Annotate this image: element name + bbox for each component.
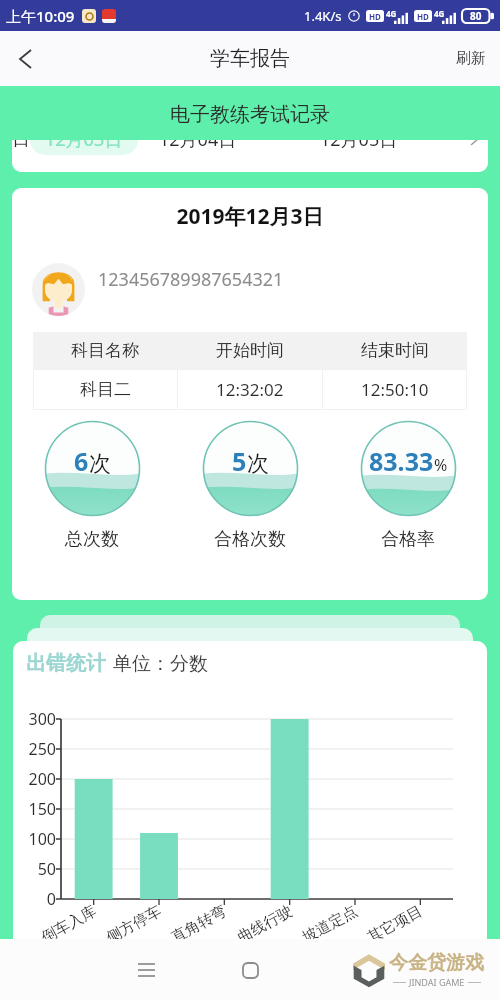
staticText: 学车报告 — [210, 46, 290, 71]
staticText: 123456789987654321 — [98, 267, 284, 292]
staticText: 83.33 — [369, 444, 434, 478]
button[interactable]: 12月03日 — [30, 140, 138, 155]
staticText: 合格次数 — [214, 528, 286, 551]
staticText: 200 — [28, 768, 56, 790]
staticText: 4G — [386, 8, 397, 19]
staticText: 刷新 — [456, 49, 486, 68]
staticText: 科目名称 — [71, 340, 139, 361]
staticText: 电子教练考试记录 — [0, 102, 500, 127]
staticText: 80 — [470, 9, 482, 23]
button[interactable]: Recent apps — [124, 948, 168, 992]
staticText: 日 — [12, 140, 30, 151]
staticText: 倒车入库 — [38, 902, 100, 947]
staticText: 50 — [37, 858, 56, 880]
button[interactable]: 12月04日 — [138, 140, 258, 155]
staticText: HD — [417, 11, 429, 22]
button[interactable]: Home — [228, 948, 272, 992]
staticText: 上午10:09 — [6, 6, 75, 26]
staticText: 150 — [28, 798, 56, 820]
staticText: 次 — [247, 450, 269, 478]
button[interactable]: 12月05日 — [258, 140, 460, 155]
staticText: 5 — [232, 444, 247, 478]
staticText: 100 — [28, 828, 56, 850]
staticText: 12:50:10 — [361, 378, 429, 401]
staticText: 坡道定点 — [299, 902, 361, 947]
staticText: 科目二 — [80, 379, 131, 400]
staticText: 单位：分数 — [113, 652, 208, 676]
staticText: HD — [369, 11, 381, 22]
staticText: 开始时间 — [216, 340, 284, 361]
staticText: 300 — [28, 708, 56, 730]
staticText: 12月05日 — [320, 140, 398, 152]
button[interactable]: 刷新 — [442, 39, 500, 78]
staticText: JINDAI GAME — [409, 976, 465, 988]
staticText: 直角转弯 — [168, 902, 230, 947]
staticText: 6 — [74, 444, 89, 478]
staticText: 总次数 — [65, 528, 119, 551]
staticText: 12:32:02 — [216, 378, 284, 401]
staticText: 结束时间 — [361, 340, 429, 361]
staticText: 出错统计 — [26, 651, 106, 676]
staticText: 次 — [89, 450, 111, 478]
button[interactable]: Next — [460, 140, 488, 155]
staticText: 4G — [434, 8, 445, 19]
button[interactable]: Back — [0, 34, 50, 84]
staticText: 2019年12月3日 — [12, 202, 488, 231]
staticText: 12月04日 — [159, 140, 237, 152]
staticText: 0 — [46, 888, 56, 910]
staticText: 合格率 — [381, 528, 435, 551]
staticText: 12月03日 — [45, 140, 123, 152]
staticText: 其它项目 — [364, 902, 426, 947]
staticText: 曲线行驶 — [234, 902, 296, 947]
staticText: % — [434, 454, 448, 476]
staticText: 今金贷游戏 — [389, 951, 484, 975]
staticText: 250 — [28, 738, 56, 760]
staticText: 1.4K/s — [304, 7, 342, 25]
staticText: 侧方停车 — [103, 902, 165, 947]
